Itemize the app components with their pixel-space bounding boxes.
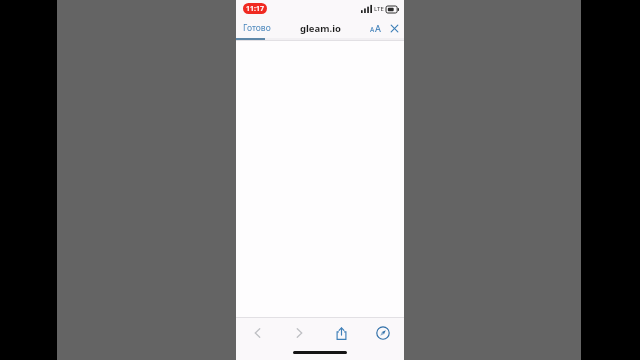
button[interactable]: Готово	[236, 18, 278, 38]
button[interactable]: Open in Safari	[362, 318, 404, 348]
staticText: A	[370, 25, 375, 34]
button[interactable]: Text size options	[366, 18, 385, 38]
staticText: Готово	[243, 22, 271, 34]
button[interactable]: Forward	[278, 318, 320, 348]
button[interactable]: Share	[320, 318, 362, 348]
button[interactable]: Close	[385, 18, 404, 38]
button[interactable]: Back	[236, 318, 278, 348]
staticText: gleam.io	[300, 22, 341, 35]
staticText: 11:17	[246, 4, 264, 14]
staticText: LTE	[374, 5, 384, 13]
staticText: A	[375, 22, 381, 34]
